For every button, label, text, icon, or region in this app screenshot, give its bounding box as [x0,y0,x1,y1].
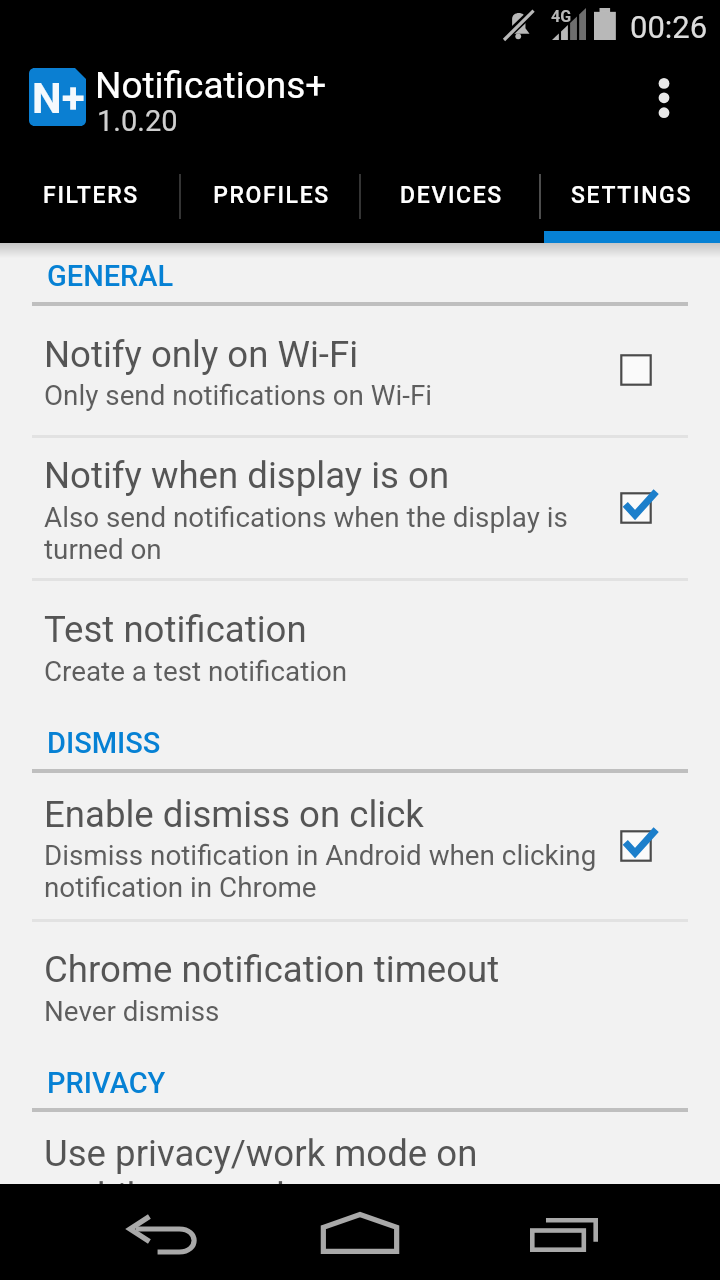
button[interactable]: FILTERS [0,164,180,243]
staticText: Also send notifications when the display… [44,501,568,534]
button[interactable]: Test notification [0,581,720,710]
button[interactable]: Back [103,1187,223,1280]
staticText: Only send notifications on Wi-Fi [44,379,433,412]
staticText: Chrome notification timeout [44,948,500,991]
staticText: Test notification [44,608,307,651]
button[interactable]: DEVICES [360,164,540,243]
staticText: Never dismiss [44,995,220,1028]
staticText: Enable dismiss on click [44,793,424,836]
button[interactable]: Notify when display is on [0,437,720,578]
button[interactable]: Notify only on Wi-Fi [0,305,720,435]
button[interactable]: More options [620,52,708,164]
staticText: N+ [32,74,85,123]
staticText: FILTERS [43,182,139,209]
staticText: 1.0.20 [97,104,178,138]
staticText: Notify only on Wi-Fi [44,333,359,376]
staticText: DEVICES [400,182,503,209]
button[interactable]: Toggle Notify only on Wi-Fi [588,305,684,435]
button[interactable]: Toggle Enable dismiss on click [588,773,684,919]
button[interactable]: Toggle Notify when display is on [588,437,684,578]
staticText: Notifications+ [95,64,327,107]
button[interactable]: Recents [504,1187,624,1280]
button[interactable]: SETTINGS [540,164,720,243]
staticText: Notify when display is on [44,454,450,497]
staticText: Create a test notification [44,655,348,688]
button[interactable]: Home [300,1185,420,1280]
staticText: SETTINGS [571,182,692,209]
staticText: PRIVACY [47,1066,166,1100]
staticText: Use privacy/work mode on [44,1132,478,1175]
staticText: Dismiss notification in Android when cli… [44,839,597,872]
staticText: mobile network [44,1175,295,1218]
staticText: PROFILES [213,182,330,209]
staticText: turned on [44,533,162,566]
button[interactable]: Chrome notification timeout [0,921,720,1050]
staticText: GENERAL [47,259,174,293]
staticText: notification in Chrome [44,871,317,904]
staticText: DISMISS [47,726,161,760]
button[interactable]: Use privacy/work mode on [0,1112,720,1234]
staticText: 00:26 [630,9,708,45]
button[interactable]: PROFILES [180,164,360,243]
staticText: 4G [551,7,572,26]
button[interactable]: Enable dismiss on click [0,773,720,919]
